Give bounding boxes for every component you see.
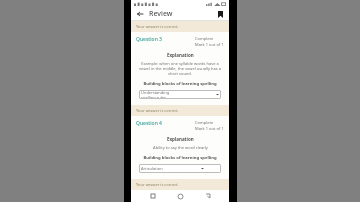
button[interactable]: Question 3 xyxy=(136,36,162,43)
staticText: Building blocks of learning spelling xyxy=(143,81,217,87)
staticText: Review xyxy=(149,9,173,19)
staticText: Explanation xyxy=(167,136,194,142)
button[interactable]: Recents xyxy=(147,190,159,202)
staticText: Your answer is correct. xyxy=(136,24,179,29)
button[interactable]: Your answer is correct. xyxy=(131,179,229,190)
staticText: Articulation xyxy=(141,166,163,171)
button[interactable]: Bookmark xyxy=(215,9,225,19)
button[interactable]: Your answer is correct. xyxy=(131,21,229,32)
staticText: Mark 1 out of 1 xyxy=(195,42,224,47)
staticText: Complete xyxy=(195,36,214,41)
button[interactable]: Your answer is correct. xyxy=(131,105,229,116)
button[interactable]: Understanding spelling rules xyxy=(139,90,221,99)
button[interactable]: Articulation xyxy=(139,164,221,173)
button[interactable]: Home xyxy=(174,190,186,202)
button[interactable]: Back xyxy=(202,190,214,202)
button[interactable]: Question 4 xyxy=(136,120,162,127)
staticText: Building blocks of learning spelling xyxy=(143,155,217,161)
staticText: Understanding spelling rules xyxy=(141,90,178,99)
staticText: Example: when one syllable words have a … xyxy=(136,61,224,76)
staticText: Mark 1 out of 1 xyxy=(195,126,224,131)
staticText: Complete xyxy=(195,120,214,125)
staticText: Ability to say the word clearly xyxy=(153,145,208,150)
button[interactable]: Back xyxy=(135,9,145,19)
staticText: Explanation xyxy=(167,52,194,58)
staticText: Your answer is correct. xyxy=(136,108,179,113)
staticText: Your answer is correct. xyxy=(136,182,179,187)
